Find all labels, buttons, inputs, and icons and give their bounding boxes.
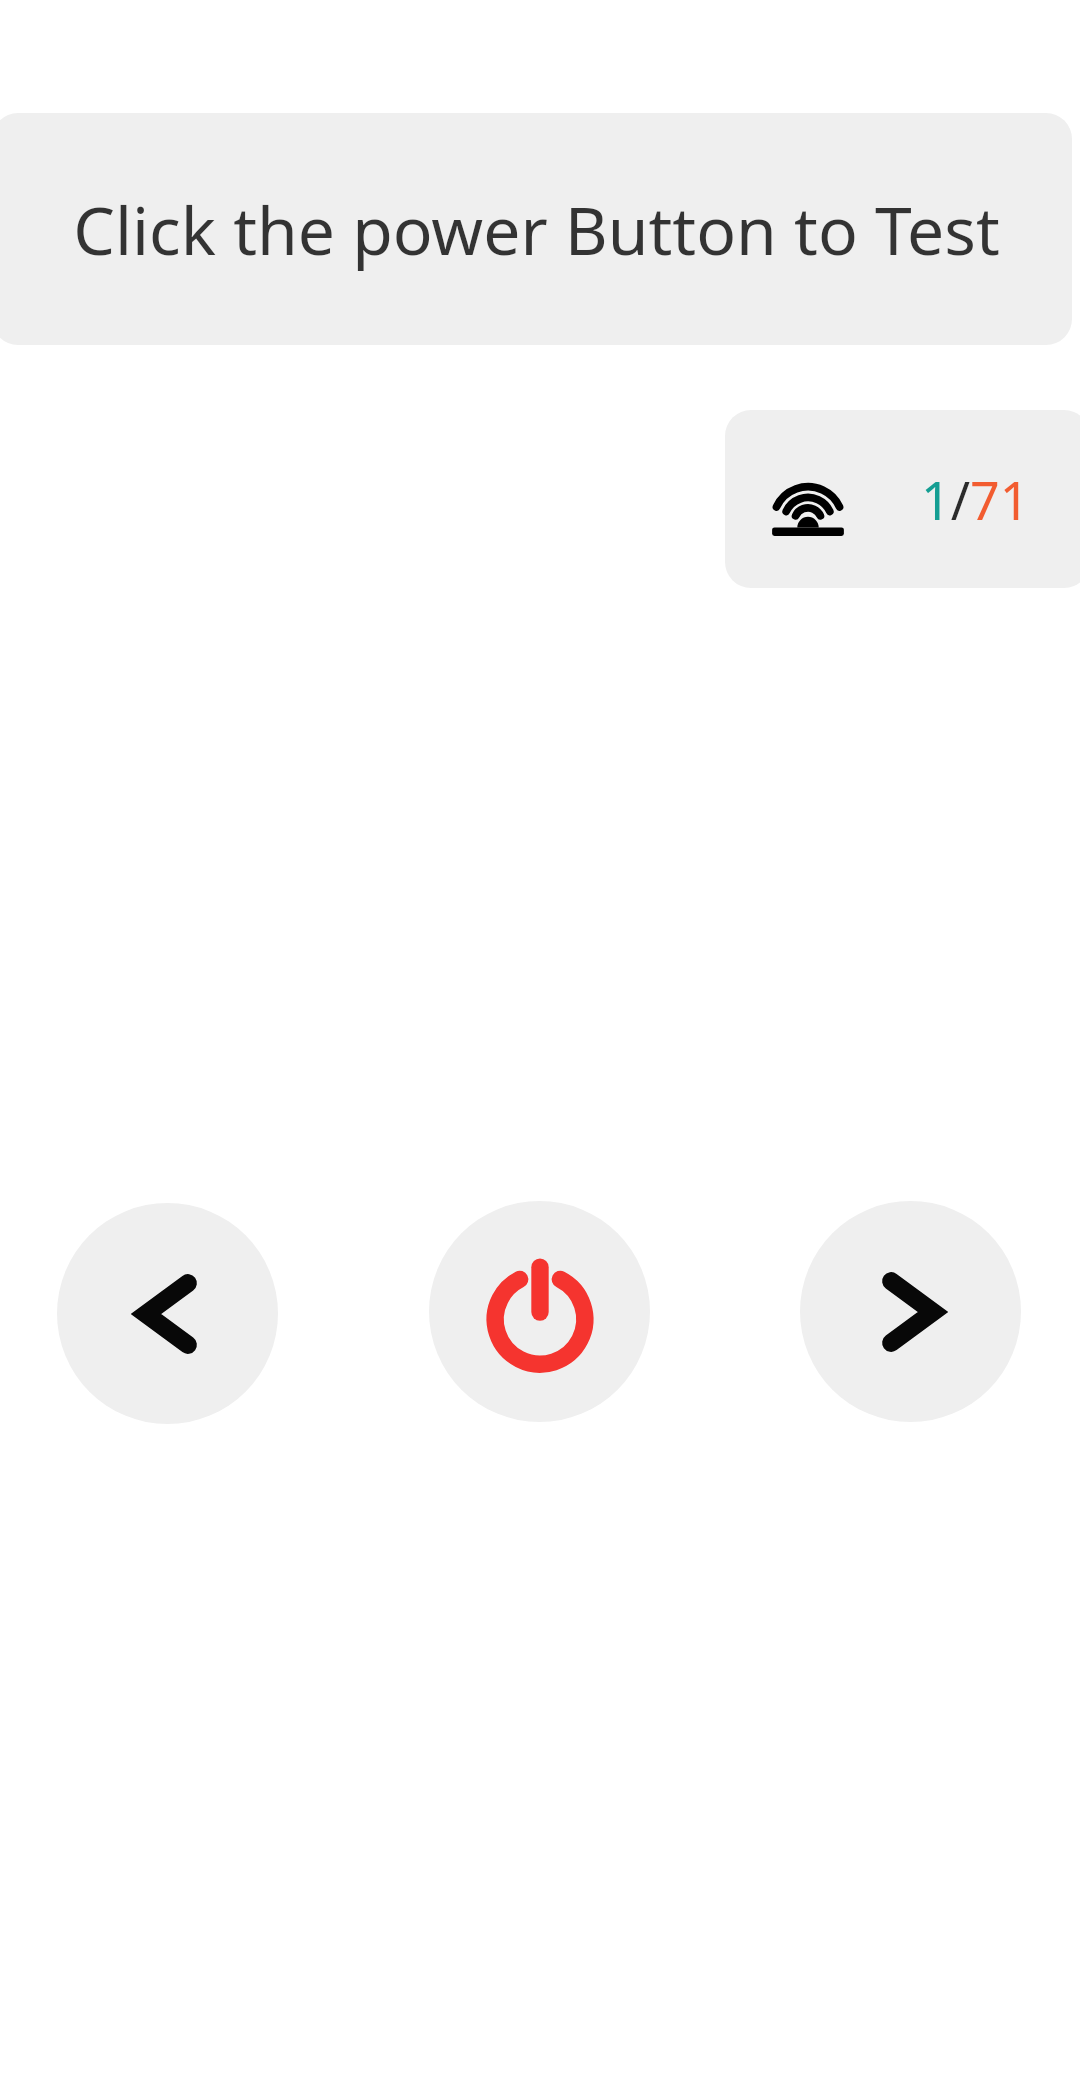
staticText: Click the power Button to Test — [73, 184, 1000, 274]
button[interactable]: Previous — [57, 1203, 278, 1424]
button[interactable]: Next — [800, 1201, 1021, 1422]
staticText: 1/71 — [921, 464, 1030, 535]
button[interactable]: Power — [429, 1201, 650, 1422]
button[interactable]: 1/71 — [725, 410, 1080, 588]
button[interactable]: Click the power Button to Test — [0, 113, 1072, 345]
